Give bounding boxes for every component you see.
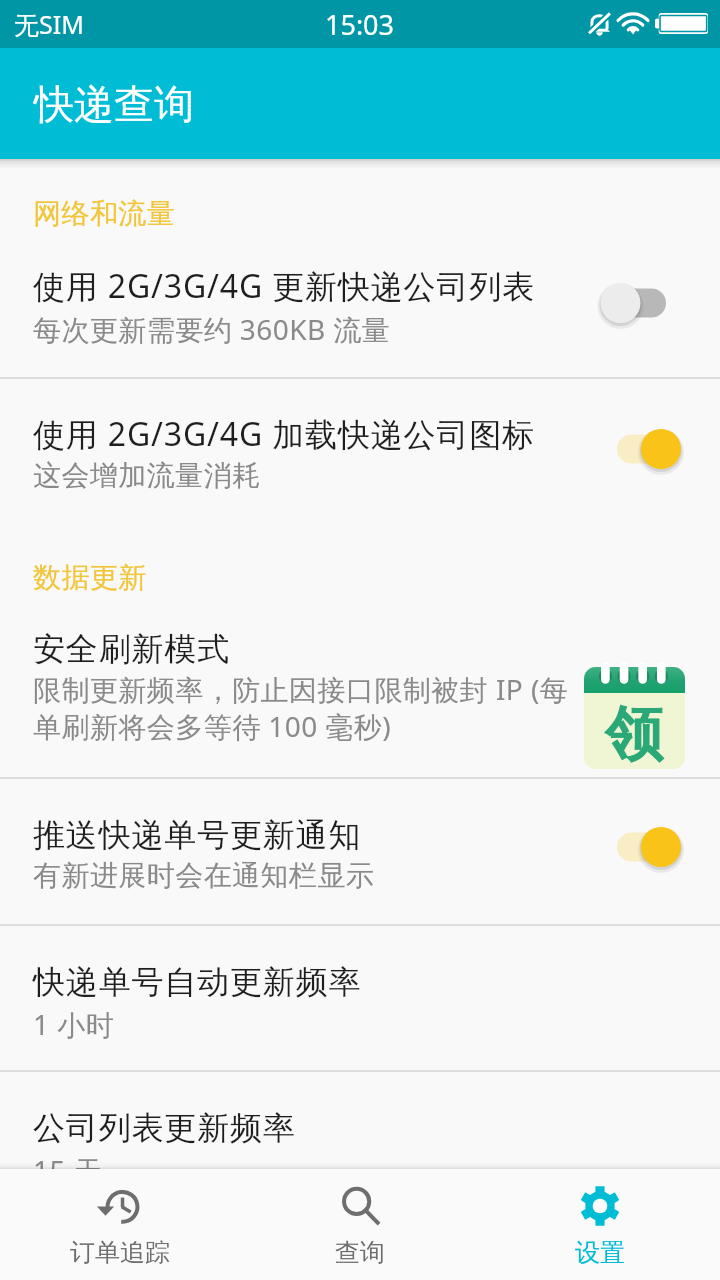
staticText: 查询 bbox=[335, 1237, 385, 1268]
staticText: 安全刷新模式 bbox=[33, 629, 230, 669]
staticText: 使用 2G/3G/4G 更新快递公司列表 bbox=[33, 264, 535, 308]
button[interactable]: Order tracking bbox=[0, 1169, 240, 1280]
staticText: 推送快递单号更新通知 bbox=[33, 815, 362, 855]
staticText: 订单追踪 bbox=[70, 1237, 170, 1268]
staticText: 无SIM bbox=[14, 7, 84, 41]
button[interactable]: Switch off bbox=[596, 273, 686, 333]
staticText: 网络和流量 bbox=[33, 196, 176, 231]
staticText: 使用 2G/3G/4G 加载快递公司图标 bbox=[33, 412, 535, 456]
button[interactable] bbox=[0, 160, 720, 377]
other: Battery full bbox=[655, 13, 708, 34]
staticText: 15 天 bbox=[33, 1151, 103, 1189]
staticText: 设置 bbox=[575, 1237, 625, 1268]
button[interactable]: Switch on bbox=[596, 419, 686, 479]
staticText: 1 小时 bbox=[33, 1005, 115, 1043]
other: Order tracking bbox=[99, 1185, 141, 1227]
button[interactable]: Switch on bbox=[596, 817, 686, 877]
button[interactable] bbox=[0, 379, 720, 545]
staticText: 公司列表更新频率 bbox=[33, 1108, 296, 1148]
button[interactable]: Search bbox=[240, 1169, 480, 1280]
other: Silent mode bbox=[589, 13, 610, 36]
button[interactable]: Settings bbox=[480, 1169, 720, 1280]
staticText: 领 bbox=[605, 698, 663, 771]
staticText: 每次更新需要约 360KB 流量 bbox=[33, 310, 391, 348]
staticText: 快递单号自动更新频率 bbox=[33, 962, 362, 1002]
other: Settings bbox=[579, 1185, 621, 1227]
button[interactable] bbox=[0, 600, 720, 777]
button[interactable] bbox=[0, 1072, 720, 1167]
staticText: 数据更新 bbox=[33, 560, 147, 595]
staticText: 快递查询 bbox=[34, 79, 194, 129]
other: Search bbox=[339, 1185, 381, 1227]
button[interactable] bbox=[0, 926, 720, 1070]
staticText: 有新进展时会在通知栏显示 bbox=[33, 858, 375, 893]
other: Wi-Fi bbox=[619, 13, 647, 34]
staticText: 限制更新频率，防止因接口限制被封 IP (每单刷新将会多等待 100 毫秒) bbox=[33, 670, 581, 746]
button[interactable] bbox=[0, 779, 720, 924]
staticText: 15:03 bbox=[325, 6, 395, 43]
staticText: 这会增加流量消耗 bbox=[33, 458, 261, 493]
